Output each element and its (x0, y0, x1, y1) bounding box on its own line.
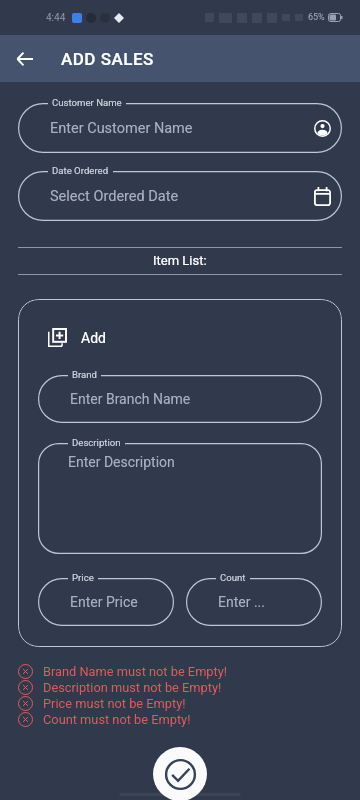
staticText: Customer Name (52, 97, 122, 108)
button[interactable]: Add (48, 328, 106, 347)
staticText: Brand Name must not be Empty! (43, 664, 228, 679)
staticText: Count (220, 572, 246, 583)
staticText: ADD SALES (61, 49, 154, 69)
button[interactable]: Submit (153, 747, 207, 800)
staticText: Price must not be Empty! (43, 696, 186, 711)
staticText: Item List: (153, 253, 207, 268)
staticText: Date Ordered (52, 165, 109, 176)
staticText: Count must not be Empty! (43, 712, 191, 727)
staticText: Select Ordered Date (50, 188, 179, 205)
staticText: Enter Customer Name (50, 120, 193, 137)
staticText: Enter ... (218, 594, 265, 610)
staticText: Description (72, 437, 121, 448)
staticText: 65% (308, 12, 325, 23)
staticText: Add (81, 330, 106, 346)
button[interactable]: Back (4, 39, 44, 79)
staticText: Brand (72, 369, 97, 380)
staticText: Enter Price (70, 594, 138, 610)
staticText: Description must not be Empty! (43, 680, 222, 695)
staticText: Price (72, 572, 94, 583)
staticText: 4:44 (46, 12, 66, 24)
staticText: Enter Description (68, 454, 175, 470)
staticText: Enter Branch Name (70, 391, 191, 407)
